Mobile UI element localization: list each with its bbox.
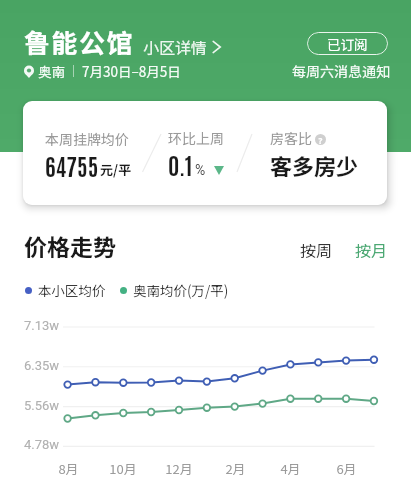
staticText: 7.13w [24, 318, 60, 333]
button[interactable]: 按月 [349, 233, 394, 266]
staticText: 6月 [336, 459, 357, 478]
staticText: 4.78w [24, 437, 60, 452]
staticText: 2月 [225, 459, 246, 478]
staticText: 元/平 [100, 160, 132, 179]
staticText: 小区详情 [143, 35, 208, 58]
staticText: 按周 [300, 238, 333, 261]
button[interactable]: 房客比说明 [315, 134, 326, 145]
staticText: 价格走势 [24, 229, 116, 262]
button[interactable]: 鲁能公馆 [24, 23, 221, 61]
staticText: ? [318, 134, 323, 145]
staticText: 64755 [45, 150, 99, 180]
staticText: 客多房少 [270, 149, 359, 181]
staticText: 本小区均价 [38, 280, 106, 300]
staticText: 12月 [165, 459, 193, 478]
staticText: 已订阅 [327, 34, 368, 54]
staticText: 0.1 [168, 149, 193, 179]
staticText: 6.35w [24, 358, 60, 373]
staticText: 奥南 [38, 61, 65, 81]
staticText: 奥南均价(万/平) [133, 280, 229, 300]
staticText: 10月 [109, 459, 137, 478]
staticText: 按月 [355, 238, 388, 261]
button[interactable]: 已订阅 [307, 32, 388, 55]
staticText: 8月 [58, 459, 79, 478]
staticText: 5.56w [24, 398, 60, 413]
staticText: 7月30日–8月5日 [82, 61, 181, 81]
staticText: % [195, 162, 206, 178]
staticText: 环比上周 [168, 128, 224, 148]
staticText: 本周挂牌均价 [45, 129, 129, 149]
staticText: 房客比 [270, 128, 312, 148]
staticText: 鲁能公馆 [24, 23, 135, 61]
button[interactable]: 按周 [294, 233, 339, 266]
staticText: 每周六消息通知 [292, 61, 390, 81]
staticText: 4月 [280, 459, 301, 478]
